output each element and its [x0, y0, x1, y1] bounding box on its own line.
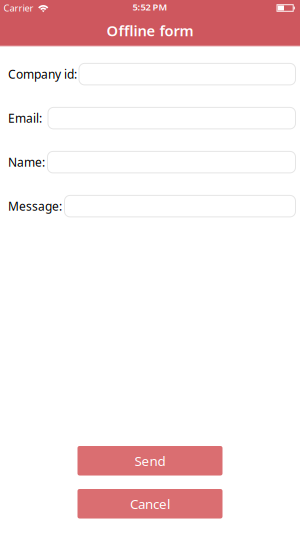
staticText: Cancel [130, 495, 170, 513]
staticText: Offline form [106, 21, 193, 40]
staticText: Carrier [3, 2, 33, 14]
staticText: Send [134, 452, 165, 470]
staticText: Company id: [8, 66, 77, 82]
button[interactable]: Cancel [77, 489, 222, 518]
button[interactable]: Send [77, 446, 222, 475]
staticText: Email: [8, 110, 42, 126]
staticText: Message: [8, 198, 62, 214]
staticText: Name: [8, 154, 45, 170]
staticText: 5:52 PM [132, 1, 167, 13]
